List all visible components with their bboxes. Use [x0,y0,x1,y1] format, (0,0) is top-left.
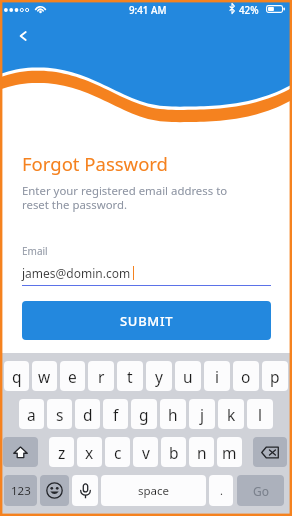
button[interactable]: 123 [4,475,37,506]
button[interactable]: s [47,399,72,429]
staticText: w [38,366,51,387]
staticText: g [139,404,149,425]
staticText: o [241,366,251,387]
button[interactable]: e [60,361,85,391]
staticText: 9:41 AM [129,4,167,17]
staticText: n [197,442,207,463]
staticText: m [222,442,237,463]
staticText: f [113,404,119,425]
staticText: b [169,442,179,463]
staticText: t [127,366,133,387]
button[interactable]: space [101,475,206,506]
button[interactable]: r [88,361,114,391]
staticText: 123 [11,483,31,499]
button[interactable]: SUBMIT [22,301,271,340]
button[interactable]: Backspace [253,437,287,467]
staticText: Email [22,244,48,258]
button[interactable]: v [133,437,158,467]
button[interactable]: Dictate [72,475,98,506]
staticText: a [27,404,36,425]
staticText: k [227,404,236,425]
button[interactable]: i [204,361,230,391]
button[interactable]: a [19,399,44,429]
staticText: h [168,404,178,425]
staticText: Forgot Password [22,151,168,176]
staticText: c [114,442,122,463]
staticText: y [155,366,163,387]
button[interactable]: Emoji [40,475,69,506]
staticText: d [83,404,93,425]
staticText: z [58,442,66,463]
button[interactable]: Go [237,475,284,506]
button[interactable]: Shift [3,437,38,467]
staticText: s [56,404,64,425]
staticText: p [270,366,280,387]
button[interactable]: . [209,475,233,506]
button[interactable]: o [233,361,259,391]
button[interactable]: m [217,437,242,467]
button[interactable]: n [189,437,214,467]
staticText: space [138,483,170,499]
button[interactable]: p [262,361,288,391]
staticText: e [68,366,77,387]
button[interactable]: z [49,437,74,467]
button[interactable]: h [160,399,186,429]
button[interactable]: d [75,399,100,429]
staticText: j [200,404,204,425]
button[interactable]: j [189,399,215,429]
staticText: Enter your registered email address to r… [22,183,228,213]
button[interactable]: q [4,361,29,391]
staticText: l [258,404,262,425]
button[interactable]: w [32,361,57,391]
button[interactable]: u [175,361,201,391]
button[interactable]: g [131,399,157,429]
staticText: u [183,366,193,387]
button[interactable]: b [161,437,186,467]
button[interactable]: c [105,437,130,467]
button[interactable]: l [247,399,273,429]
staticText: Go [253,483,269,499]
staticText: james@domin.com [22,265,131,281]
button[interactable]: Back [9,22,36,49]
staticText: i [215,366,219,387]
button[interactable]: y [146,361,172,391]
button[interactable]: k [218,399,244,429]
staticText: . [220,483,223,498]
staticText: SUBMIT [120,312,174,330]
button[interactable]: t [117,361,143,391]
staticText: r [98,366,105,387]
button[interactable]: f [103,399,128,429]
button[interactable]: x [77,437,102,467]
staticText: v [142,442,150,463]
staticText: q [12,366,22,387]
staticText: x [85,442,94,463]
staticText: 42% [239,4,259,17]
